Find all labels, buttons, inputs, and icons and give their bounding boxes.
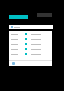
button[interactable]: Save	[12, 62, 15, 65]
